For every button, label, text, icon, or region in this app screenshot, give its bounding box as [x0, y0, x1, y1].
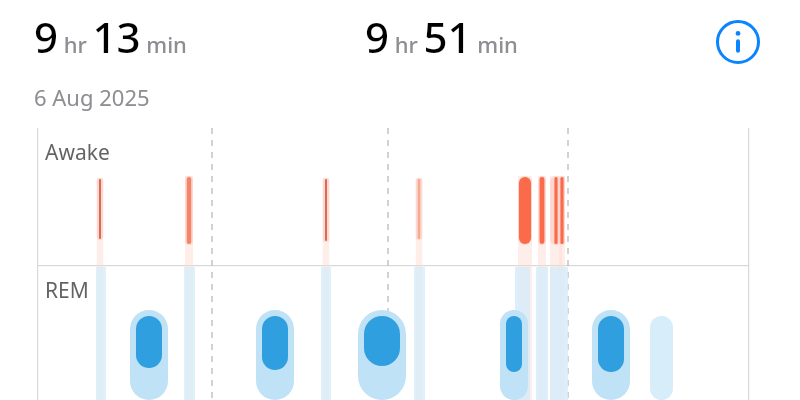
- staticText: 9 hr 13 min: [34, 8, 187, 65]
- button[interactable]: Information: [712, 16, 764, 68]
- staticText: REM: [45, 276, 89, 305]
- staticText: 6 Aug 2025: [34, 82, 150, 112]
- staticText: 9 hr 51 min: [365, 8, 518, 65]
- staticText: Awake: [45, 138, 110, 167]
